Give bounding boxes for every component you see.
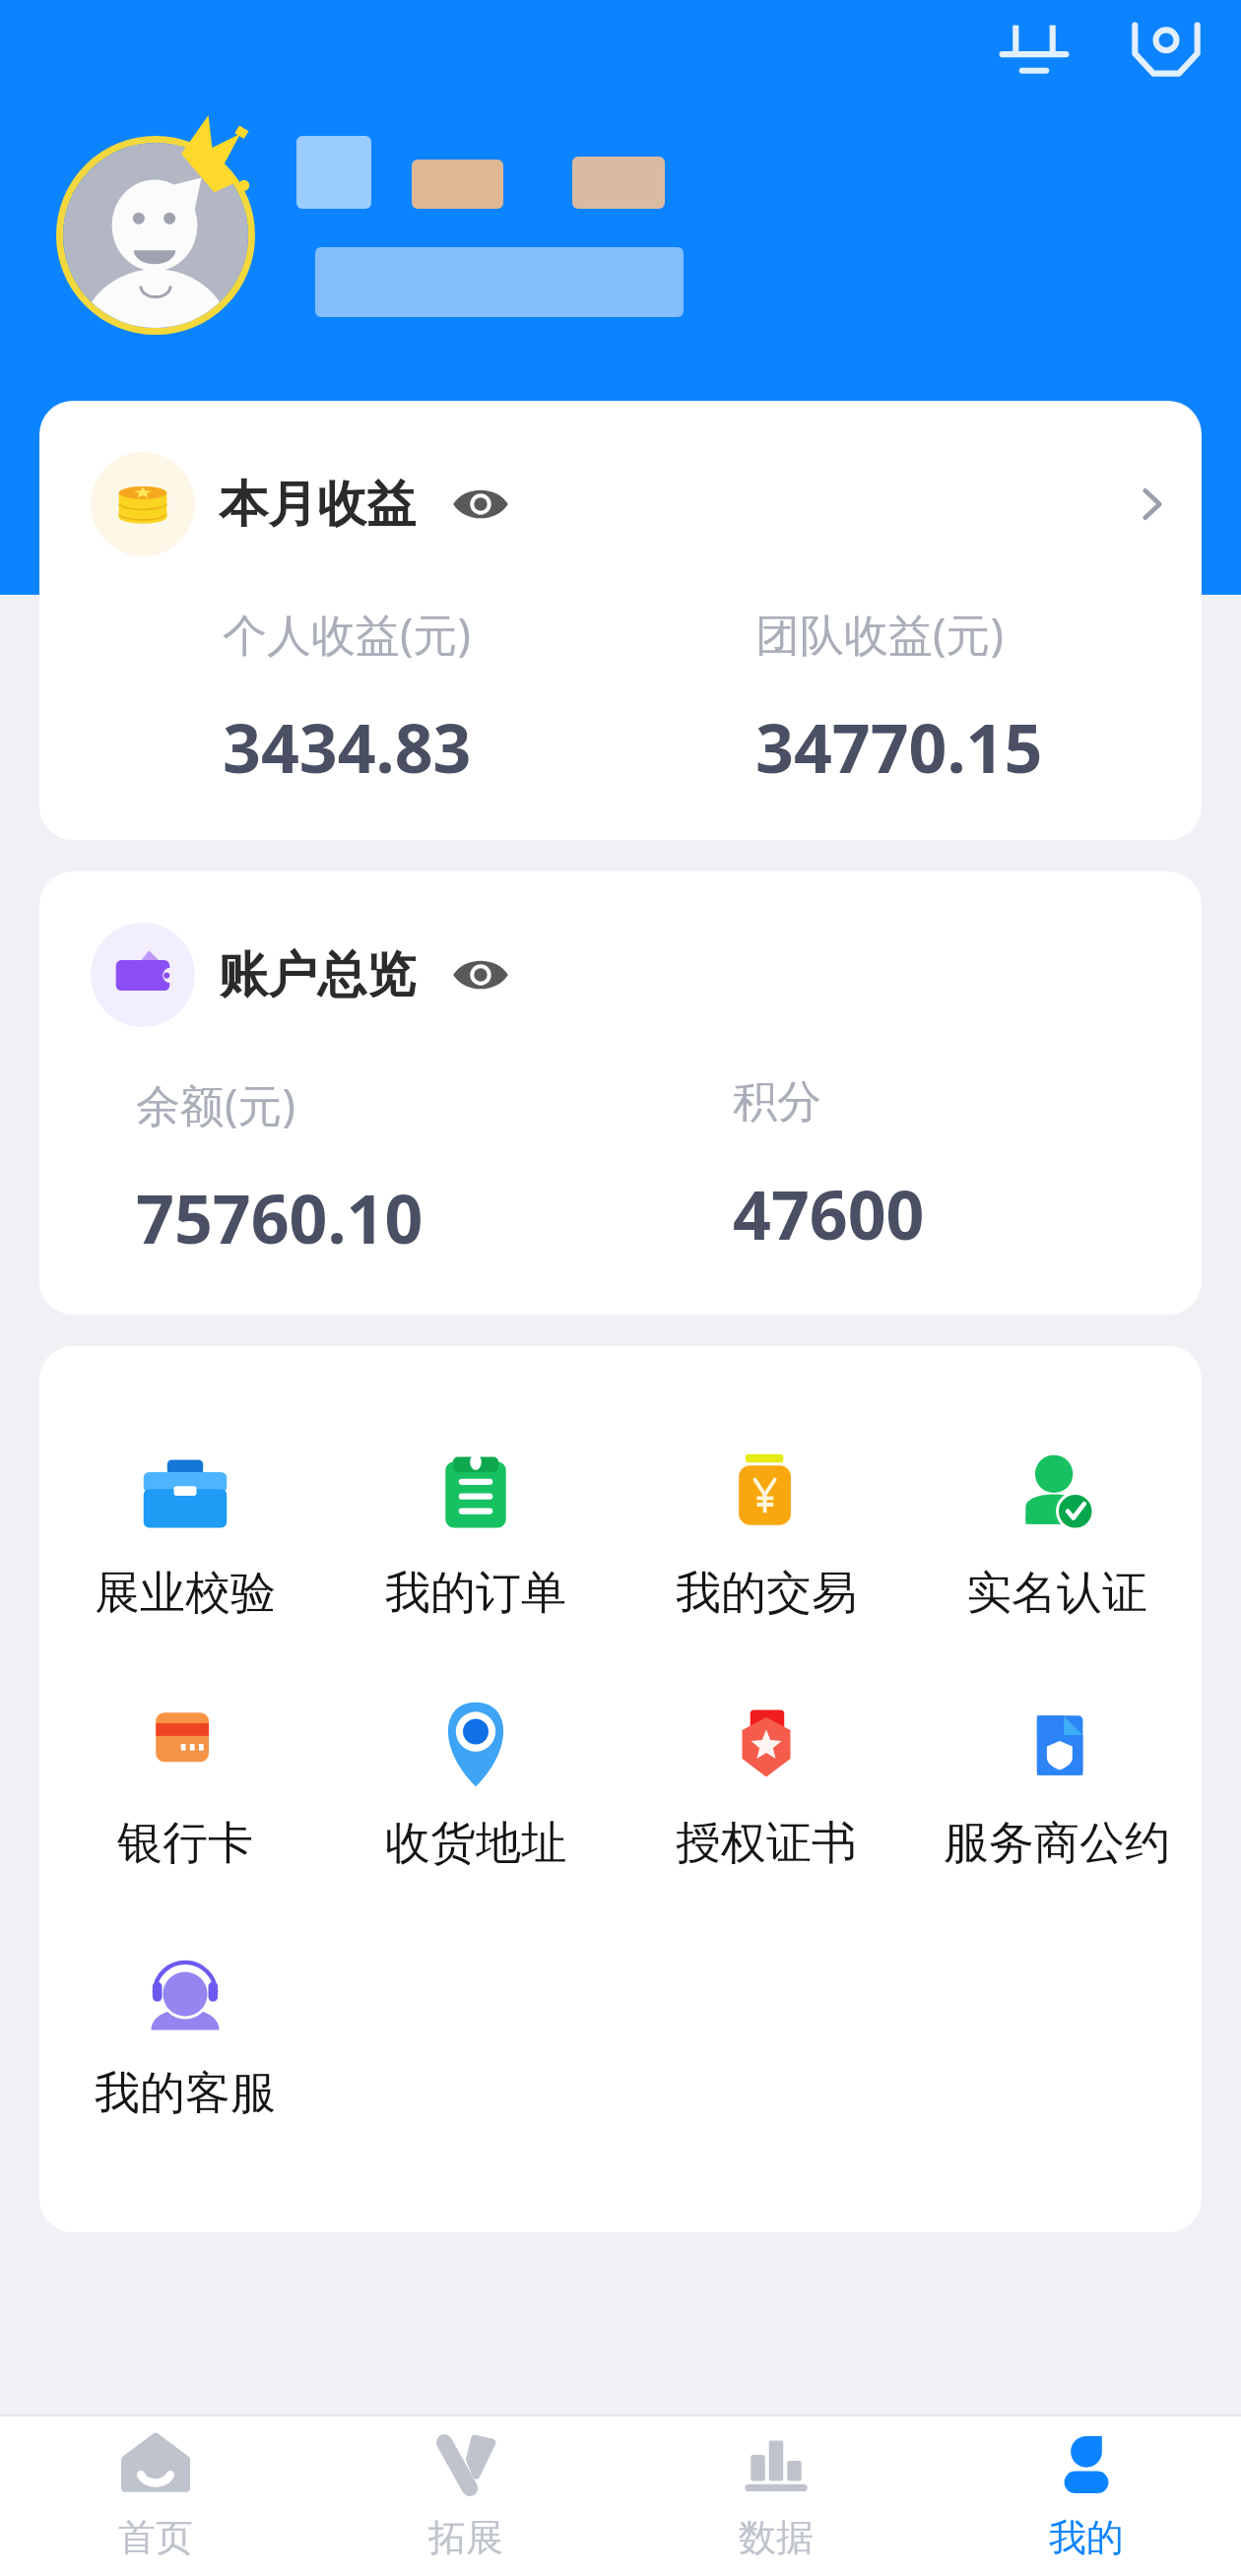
button[interactable]: 本月收益	[39, 401, 1202, 840]
staticText: 75760.10	[136, 1172, 424, 1263]
staticText: 收货地址	[385, 1815, 566, 1872]
staticText: 47600	[733, 1168, 925, 1259]
button[interactable]: 我的订单	[330, 1447, 620, 1622]
staticText: 本月收益	[219, 474, 416, 536]
staticText: 我的	[1049, 2514, 1124, 2558]
button[interactable]: Message	[1119, 5, 1213, 99]
button[interactable]: Toggle visibility	[451, 945, 510, 1004]
staticText: 3434.83	[223, 701, 472, 793]
button[interactable]: 展业校验	[39, 1447, 330, 1622]
staticText: 账户总览	[219, 944, 416, 1006]
staticText: 我的订单	[385, 1565, 566, 1622]
staticText: 拓展	[428, 2514, 503, 2558]
staticText: 个人收益(元)	[223, 604, 472, 664]
staticText: 团队收益(元)	[755, 604, 1005, 664]
button[interactable]: 银行卡	[39, 1697, 330, 1872]
staticText: 首页	[118, 2514, 193, 2558]
button[interactable]: 我的交易	[620, 1447, 911, 1622]
button[interactable]: 我的客服	[39, 1947, 330, 2122]
button[interactable]: Scan code	[987, 5, 1081, 99]
staticText: 数据	[739, 2514, 814, 2558]
staticText: 银行卡	[117, 1815, 253, 1872]
button[interactable]: 服务商公约	[911, 1697, 1202, 1872]
staticText: 我的交易	[676, 1565, 857, 1622]
button[interactable]: 首页	[0, 2416, 310, 2576]
staticText: 我的客服	[95, 2065, 276, 2122]
staticText: 服务商公约	[944, 1815, 1170, 1872]
staticText: 实名认证	[966, 1565, 1147, 1622]
staticText: 授权证书	[676, 1815, 857, 1872]
staticText: 余额(元)	[136, 1074, 296, 1134]
button[interactable]: 账户总览	[39, 871, 1202, 1315]
button[interactable]: 收货地址	[330, 1697, 620, 1872]
button[interactable]: 授权证书	[620, 1697, 911, 1872]
staticText: 展业校验	[95, 1565, 276, 1622]
staticText: 34770.15	[755, 701, 1043, 793]
button[interactable]: More details	[1125, 477, 1180, 532]
staticText: 积分	[733, 1074, 821, 1130]
button[interactable]: Toggle visibility	[451, 475, 510, 534]
button[interactable]: 数据	[620, 2416, 931, 2576]
button[interactable]: 实名认证	[911, 1447, 1202, 1622]
button[interactable]: 拓展	[310, 2416, 620, 2576]
button[interactable]: 我的	[931, 2416, 1241, 2576]
